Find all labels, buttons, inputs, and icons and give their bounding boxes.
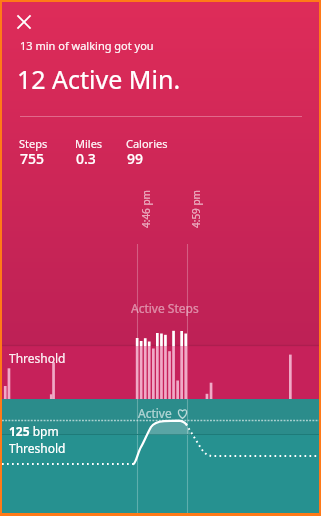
staticText: 0.3 [76, 149, 96, 168]
staticText: 12 Active Min. [17, 62, 181, 96]
button[interactable]: Close [12, 10, 36, 34]
staticText: Active [138, 405, 172, 421]
staticText: Calories [126, 136, 168, 151]
staticText: Threshold [9, 350, 66, 366]
staticText: Steps [19, 136, 48, 151]
staticText: 755 [20, 149, 45, 168]
staticText: Active Steps [131, 300, 199, 316]
staticText: 4:59 pm [189, 190, 203, 228]
staticText: Threshold [9, 440, 66, 456]
staticText: 125 bpm [9, 423, 59, 439]
staticText: Miles [75, 136, 103, 151]
staticText: 13 min of walking got you [20, 38, 154, 53]
staticText: 4:46 pm [139, 190, 153, 228]
staticText: 99 [127, 149, 144, 168]
